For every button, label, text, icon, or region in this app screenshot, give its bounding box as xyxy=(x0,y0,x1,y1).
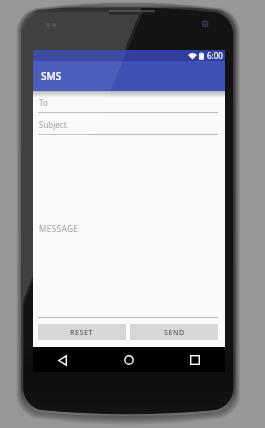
button[interactable]: Recent apps xyxy=(186,354,204,366)
other: Back xyxy=(58,355,67,366)
staticText: RESET xyxy=(70,327,94,337)
button[interactable]: MESSAGE xyxy=(38,135,218,318)
staticText: SEND xyxy=(164,327,185,337)
button[interactable]: Subject xyxy=(38,119,218,135)
staticText: MESSAGE xyxy=(39,223,79,234)
button[interactable]: To xyxy=(38,97,218,113)
button[interactable]: Home xyxy=(120,354,138,366)
staticText: 6:00 xyxy=(207,50,223,61)
staticText: SMS xyxy=(41,69,62,83)
button[interactable]: RESET xyxy=(38,324,126,340)
other: Home xyxy=(124,355,134,365)
staticText: To xyxy=(39,97,48,108)
staticText: Subject xyxy=(39,119,67,130)
button[interactable]: SEND xyxy=(130,324,218,340)
button[interactable]: Back xyxy=(53,354,71,366)
other: Recent apps xyxy=(190,355,200,365)
